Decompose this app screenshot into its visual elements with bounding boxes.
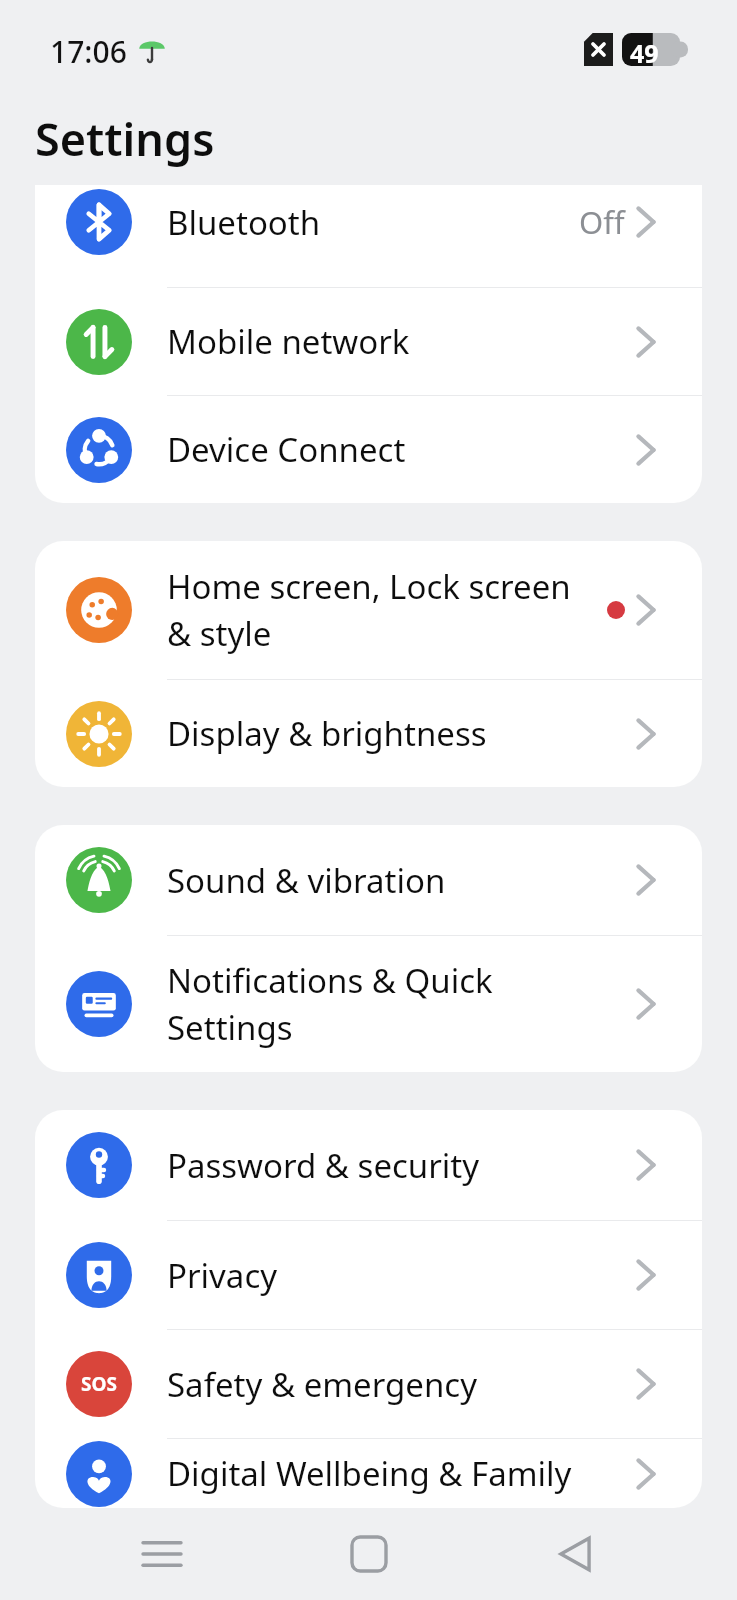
button[interactable]: Home screen, Lock screen & style xyxy=(35,541,702,679)
button[interactable]: Privacy xyxy=(35,1221,702,1329)
button[interactable]: Sound & vibration xyxy=(35,825,702,935)
button[interactable]: Digital Wellbeing & Family xyxy=(35,1439,702,1508)
staticText: Notifications & Quick Settings xyxy=(167,958,587,1050)
staticText: Password & security xyxy=(167,1143,587,1188)
staticText: Mobile network xyxy=(167,319,587,364)
button[interactable]: Bluetooth xyxy=(35,185,702,287)
staticText: Bluetooth xyxy=(167,200,587,245)
staticText: SOS xyxy=(81,1371,117,1397)
button[interactable]: Recent apps xyxy=(117,1509,207,1599)
button[interactable]: Mobile network xyxy=(35,288,702,395)
staticText: Display & brightness xyxy=(167,711,587,756)
button[interactable]: Back xyxy=(530,1509,620,1599)
staticText: 17:06 xyxy=(50,31,127,72)
button[interactable]: Device Connect xyxy=(35,396,702,503)
staticText: Home screen, Lock screen & style xyxy=(167,564,587,656)
staticText: Digital Wellbeing & Family xyxy=(167,1451,587,1496)
button[interactable]: Display & brightness xyxy=(35,680,702,787)
staticText: 49 xyxy=(630,36,659,70)
staticText: Sound & vibration xyxy=(167,858,587,903)
staticText: Off xyxy=(579,201,625,243)
staticText: Privacy xyxy=(167,1253,587,1298)
button[interactable]: Password & security xyxy=(35,1110,702,1220)
button[interactable]: Notifications & Quick Settings xyxy=(35,936,702,1072)
staticText: Device Connect xyxy=(167,427,587,472)
staticText: Settings xyxy=(35,108,215,169)
staticText: Safety & emergency xyxy=(167,1362,587,1407)
button[interactable]: SOS xyxy=(35,1330,702,1438)
button[interactable]: Home xyxy=(324,1509,414,1599)
